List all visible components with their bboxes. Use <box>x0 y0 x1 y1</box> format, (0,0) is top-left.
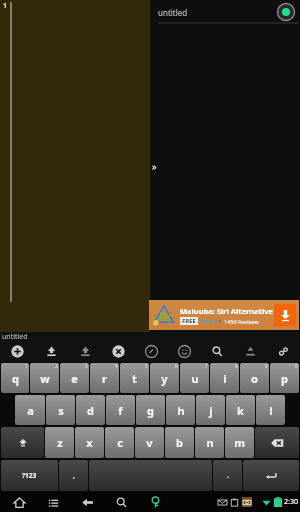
button[interactable]: x <box>75 427 104 458</box>
staticText: x <box>86 435 93 450</box>
staticText: k <box>237 403 244 418</box>
button[interactable]: k <box>226 395 255 425</box>
button[interactable]: ?123 <box>1 460 58 491</box>
button[interactable]: m <box>225 427 254 458</box>
staticText: e <box>71 371 78 386</box>
button[interactable]: Close <box>102 340 135 362</box>
staticText: 9 <box>265 363 268 369</box>
staticText: b <box>176 435 183 450</box>
staticText: f <box>118 403 123 418</box>
staticText: 5 <box>145 363 148 369</box>
staticText: FREE <box>182 317 196 325</box>
button[interactable]: n <box>195 427 224 458</box>
staticText: 1450 Reviews <box>224 318 259 325</box>
staticText: w <box>40 371 50 386</box>
staticText: c <box>117 435 123 450</box>
staticText: ?123 <box>22 471 37 480</box>
staticText: 8 <box>235 363 238 369</box>
staticText: 1 <box>25 363 28 369</box>
button[interactable]: Settings <box>267 340 300 362</box>
staticText: d <box>87 403 94 418</box>
staticText: r <box>102 371 107 386</box>
button[interactable]: Share <box>234 340 267 362</box>
staticText: a <box>27 403 34 418</box>
staticText: , <box>73 471 75 480</box>
staticText: n <box>206 435 214 450</box>
button[interactable]: Recents <box>36 492 70 512</box>
staticText: g <box>147 403 154 418</box>
staticText: 1 <box>3 1 8 11</box>
button[interactable]: h <box>166 395 195 425</box>
button[interactable]: w <box>30 363 59 393</box>
staticText: h <box>177 403 185 418</box>
staticText: j <box>209 403 213 418</box>
staticText: 4 <box>115 363 118 369</box>
staticText: q <box>12 371 19 386</box>
button[interactable]: Home <box>2 492 36 512</box>
button[interactable]: Install <box>274 304 296 326</box>
button[interactable]: y <box>150 363 179 393</box>
button[interactable]: Emoji <box>168 340 201 362</box>
staticText: y <box>161 371 168 386</box>
button[interactable]: i <box>210 363 239 393</box>
button[interactable]: Load <box>68 340 102 362</box>
staticText: Maluuba: Siri Alternative <box>180 306 273 316</box>
button[interactable]: , <box>59 460 88 491</box>
button[interactable]: a <box>15 395 45 425</box>
staticText: 2 <box>55 363 58 369</box>
staticText: p <box>281 371 288 386</box>
button[interactable]: o <box>240 363 269 393</box>
button[interactable]: Search <box>201 340 234 362</box>
staticText: 3 <box>85 363 88 369</box>
button[interactable]: e <box>60 363 89 393</box>
staticText: l <box>269 403 273 418</box>
button[interactable]: Record <box>276 2 296 22</box>
button[interactable]: v <box>135 427 164 458</box>
button[interactable]: c <box>105 427 134 458</box>
staticText: 6 <box>175 363 178 369</box>
button[interactable]: Add <box>0 340 34 362</box>
button[interactable]: p <box>270 363 299 393</box>
button[interactable]: 1 <box>0 0 150 332</box>
staticText: v <box>146 435 153 450</box>
staticText: u <box>191 371 199 386</box>
staticText: . <box>227 471 229 480</box>
button[interactable]: b <box>165 427 194 458</box>
button[interactable]: Undo <box>135 340 168 362</box>
button[interactable]: t <box>120 363 149 393</box>
staticText: untitled <box>158 7 276 18</box>
button[interactable]: Menu <box>138 492 172 512</box>
button[interactable]: u <box>180 363 209 393</box>
button[interactable]: r <box>90 363 119 393</box>
button[interactable]: Enter <box>243 460 299 491</box>
button[interactable]: z <box>45 427 74 458</box>
staticText: i <box>223 371 227 386</box>
button[interactable]: l <box>256 395 285 425</box>
staticText: » <box>152 160 157 172</box>
button[interactable]: Search <box>104 492 138 512</box>
staticText: m <box>234 435 245 450</box>
button[interactable]: d <box>76 395 105 425</box>
button[interactable]: q <box>1 363 29 393</box>
button[interactable]: j <box>196 395 225 425</box>
button[interactable]: . <box>213 460 242 491</box>
button[interactable] <box>89 460 212 491</box>
staticText: 2:30 <box>284 497 298 507</box>
staticText: z <box>57 435 63 450</box>
staticText: 0 <box>295 363 298 369</box>
button[interactable]: Backspace <box>255 427 299 458</box>
staticText: s <box>58 403 64 418</box>
button[interactable]: Back <box>70 492 104 512</box>
staticText: t <box>132 371 137 386</box>
staticText: untitled <box>2 332 28 342</box>
staticText: 7 <box>205 363 208 369</box>
button[interactable]: Save <box>34 340 68 362</box>
button[interactable]: Maluuba: Siri Alternative <box>149 300 299 330</box>
button[interactable]: f <box>106 395 135 425</box>
button[interactable]: g <box>136 395 165 425</box>
button[interactable]: s <box>46 395 75 425</box>
staticText: o <box>251 371 258 386</box>
button[interactable]: Shift <box>1 427 44 458</box>
